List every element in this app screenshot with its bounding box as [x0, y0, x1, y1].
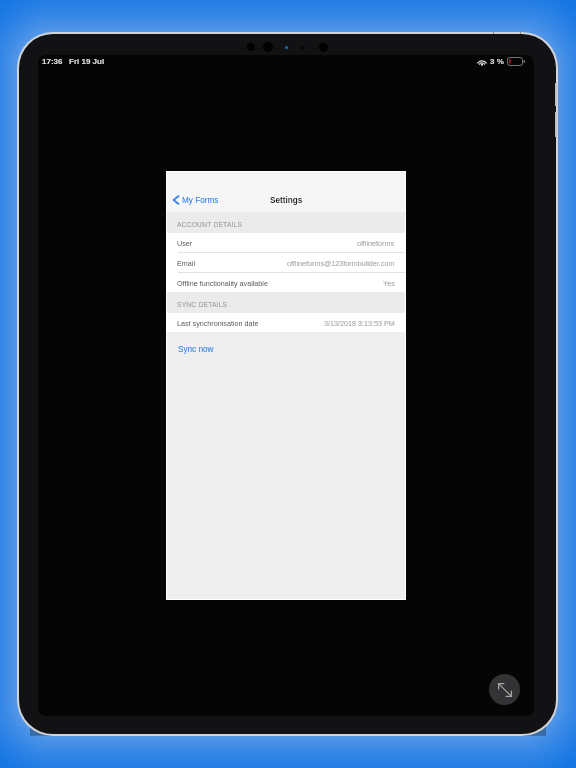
- button[interactable]: Offline functionality available: [167, 273, 405, 292]
- button[interactable]: My Forms: [173, 195, 219, 205]
- staticText: Offline functionality available: [177, 279, 268, 287]
- staticText: Sync now: [178, 345, 214, 354]
- staticText: 17:36: [42, 57, 63, 66]
- staticText: Fri 19 Jul: [69, 57, 105, 66]
- staticText: offlineforms@123formbuilder.com: [287, 259, 395, 267]
- button[interactable]: Email: [167, 253, 405, 272]
- button[interactable]: Last synchronisation date: [167, 313, 405, 332]
- button[interactable]: Enter full screen: [489, 674, 520, 705]
- staticText: offlineforms: [357, 239, 395, 247]
- staticText: 3 %: [490, 57, 504, 66]
- staticText: ACCOUNT DETAILS: [177, 221, 243, 228]
- staticText: User: [177, 239, 193, 247]
- staticText: My Forms: [182, 196, 219, 205]
- staticText: Email: [177, 259, 195, 267]
- button[interactable]: Sync now: [167, 340, 405, 359]
- staticText: Settings: [270, 196, 303, 205]
- staticText: SYNC DETAILS: [177, 301, 228, 308]
- staticText: Last synchronisation date: [177, 319, 259, 327]
- button[interactable]: User: [167, 233, 405, 252]
- staticText: Yes: [383, 279, 395, 287]
- staticText: 3/13/2018 3:13:53 PM: [324, 319, 395, 327]
